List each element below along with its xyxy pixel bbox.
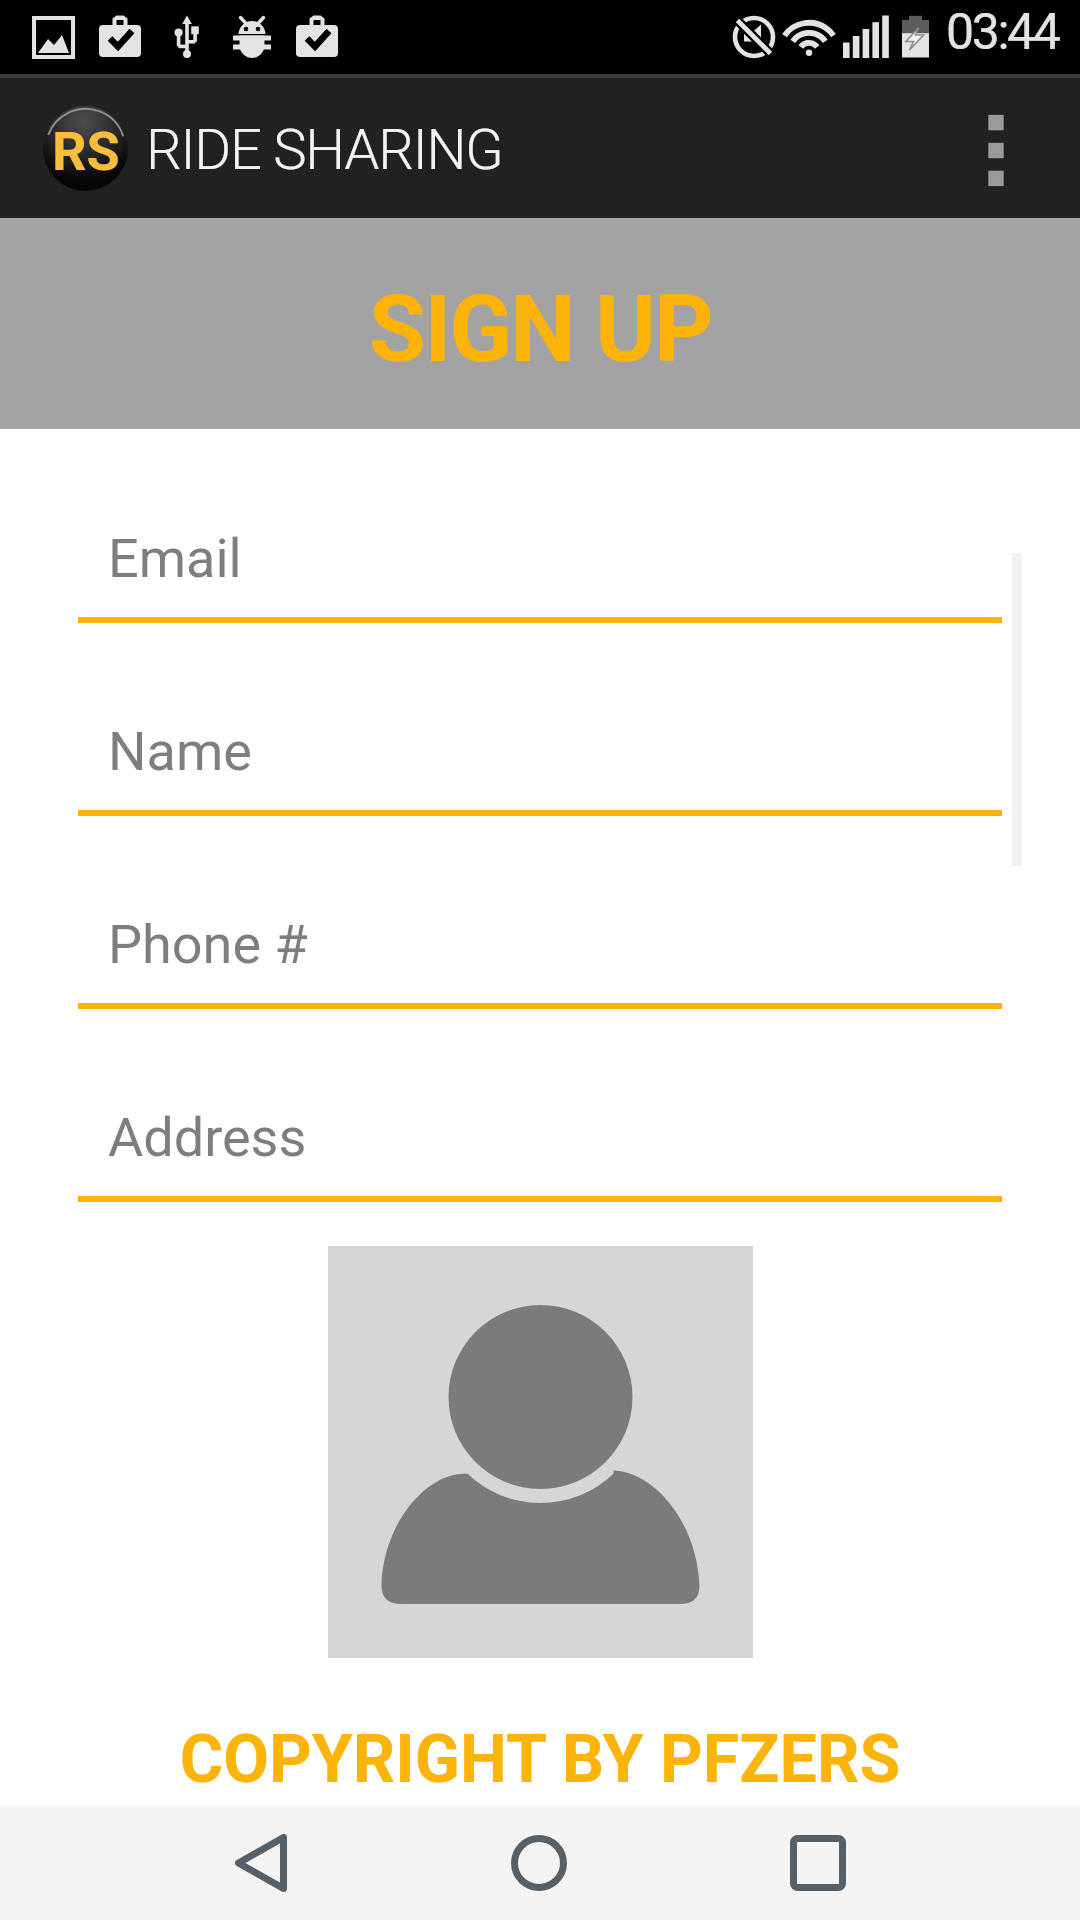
staticText: Email [108,527,242,590]
staticText: RS [52,120,120,183]
button[interactable]: Back [205,1807,317,1919]
staticText: Address [108,1106,307,1169]
button[interactable]: Email [0,527,1080,623]
button[interactable]: Recent apps [762,1807,874,1919]
button[interactable]: Name [0,720,1080,816]
button[interactable]: More options [940,78,1052,218]
staticText: Name [108,720,252,783]
button[interactable]: Home [483,1807,595,1919]
button[interactable]: Profile photo [328,1246,753,1658]
button[interactable]: Address [0,1106,1080,1202]
staticText: Phone # [108,913,308,976]
staticText: RIDE SHARING [146,117,503,183]
staticText: COPYRIGHT BY PFZERS [0,1720,1080,1798]
staticText: 03:44 [946,3,1059,62]
button[interactable]: Phone # [0,913,1080,1009]
staticText: SIGN UP [369,276,712,384]
